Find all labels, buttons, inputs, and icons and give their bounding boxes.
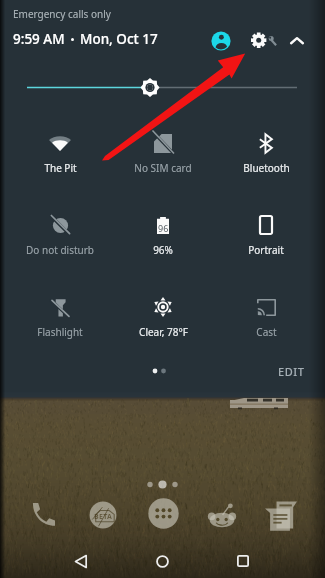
button[interactable]: All apps	[142, 492, 184, 534]
staticText: No SIM card	[134, 161, 192, 175]
staticText: 9:59 AM	[13, 30, 65, 48]
staticText: EDIT	[278, 364, 305, 379]
staticText: Emergency calls only	[13, 7, 111, 21]
staticText: Do not disturb	[26, 243, 94, 257]
staticText: Flashlight	[37, 325, 83, 339]
button[interactable]: Reddit	[201, 494, 243, 536]
button[interactable]: Collapse panel	[284, 28, 310, 54]
button[interactable]: Home	[145, 544, 179, 578]
button[interactable]: News	[260, 494, 302, 536]
button[interactable]: Do not disturb	[10, 199, 110, 261]
button[interactable]: Recent apps	[226, 544, 260, 578]
staticText: Mon, Oct 17	[80, 30, 158, 48]
staticText: BETA	[94, 512, 113, 522]
staticText: Clear, 78°F	[139, 325, 188, 339]
button[interactable]: 96	[113, 199, 213, 261]
button[interactable]: User profile	[207, 27, 235, 55]
button[interactable]: EDIT	[268, 360, 314, 382]
button[interactable]: Settings	[246, 26, 278, 58]
button[interactable]: The Pit	[10, 117, 110, 179]
button[interactable]: Portrait	[216, 199, 316, 261]
staticText: Bluetooth	[243, 161, 290, 175]
staticText: Portrait	[248, 243, 284, 257]
button[interactable]: Phone	[22, 493, 64, 535]
button[interactable]: Cast	[216, 281, 316, 343]
staticText: 96%	[153, 243, 173, 257]
staticText: Cast	[256, 325, 277, 339]
button[interactable]: Brightness	[14, 74, 325, 102]
button[interactable]: No SIM card	[113, 117, 213, 179]
button[interactable]: Camera Beta	[82, 494, 124, 536]
staticText: The Pit	[44, 161, 77, 175]
button[interactable]: Bluetooth	[216, 117, 316, 179]
button[interactable]: Back	[64, 544, 98, 578]
button[interactable]: Clear, 78°F	[113, 281, 213, 343]
button[interactable]: Flashlight	[10, 281, 110, 343]
staticText: 96	[158, 222, 169, 234]
